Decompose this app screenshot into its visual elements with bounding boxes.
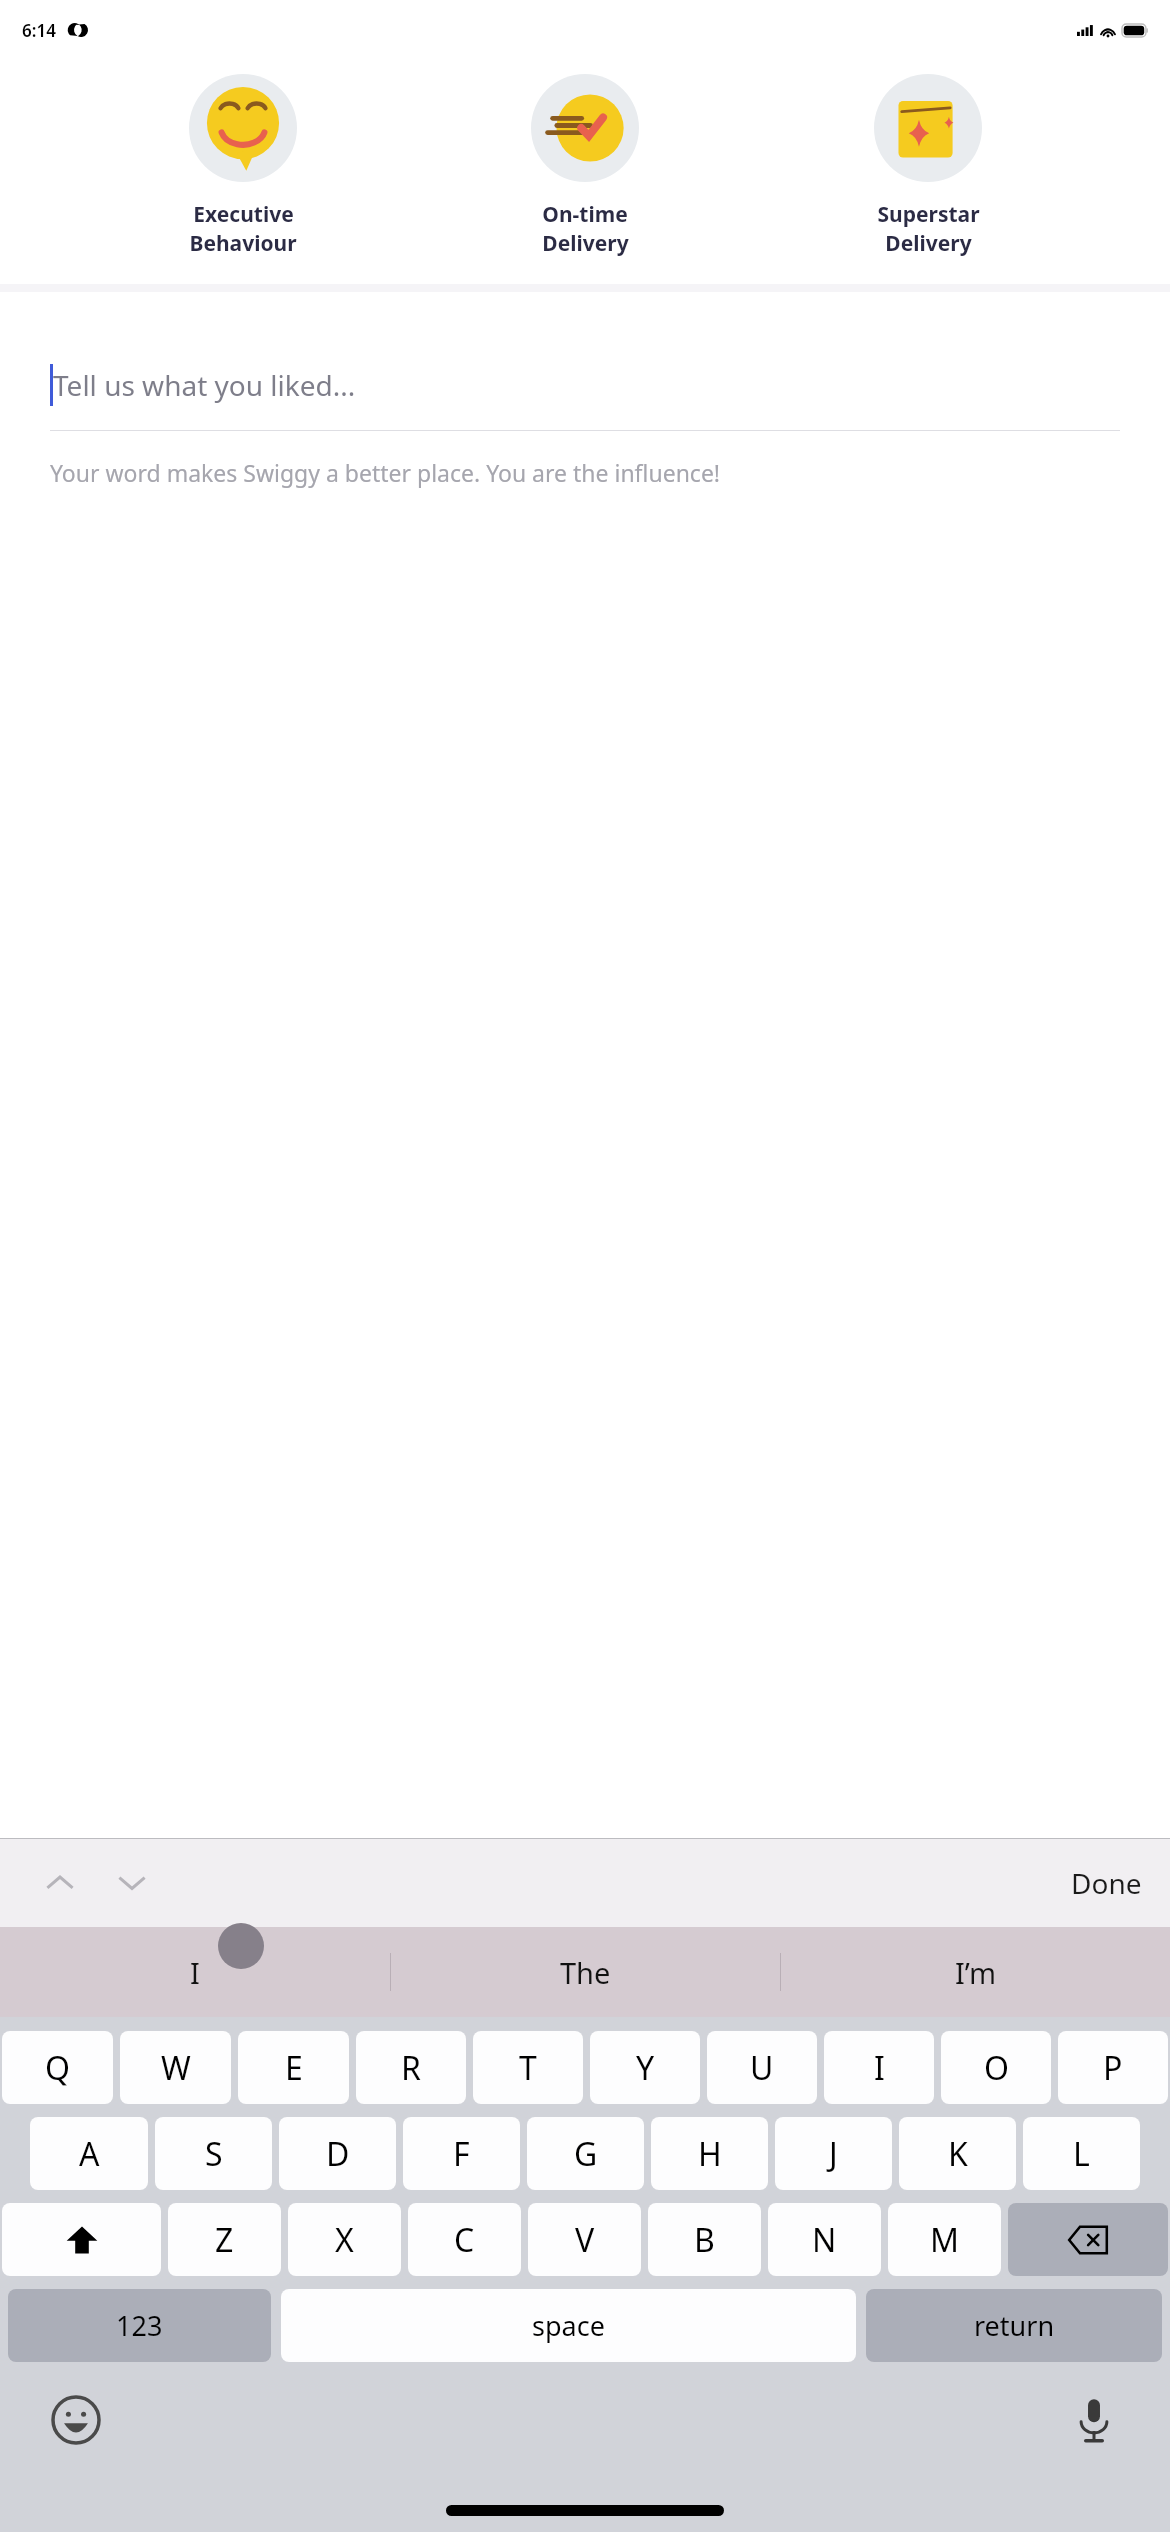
staticText: Your word makes Swiggy a better place. Y…: [50, 457, 721, 488]
button[interactable]: Superstar: [828, 74, 1028, 258]
staticText: Behaviour: [189, 229, 297, 258]
staticText: J: [829, 2132, 838, 2176]
button[interactable]: On-time: [485, 74, 685, 258]
staticText: Delivery: [542, 229, 629, 258]
staticText: F: [453, 2132, 470, 2176]
staticText: I: [874, 2046, 885, 2090]
button[interactable]: W: [120, 2031, 231, 2104]
button[interactable]: I’m: [781, 1927, 1170, 2017]
staticText: Z: [215, 2218, 234, 2262]
staticText: 123: [116, 2307, 163, 2344]
button[interactable]: I: [824, 2031, 934, 2104]
button[interactable]: V: [528, 2203, 641, 2276]
button[interactable]: L: [1023, 2117, 1140, 2190]
staticText: Executive: [193, 200, 294, 229]
staticText: E: [285, 2046, 303, 2090]
button[interactable]: F: [403, 2117, 520, 2190]
staticText: D: [326, 2132, 350, 2176]
button[interactable]: G: [527, 2117, 644, 2190]
button[interactable]: Executive: [143, 74, 343, 258]
staticText: H: [698, 2132, 722, 2176]
staticText: Tell us what you liked...: [53, 366, 356, 404]
button[interactable]: Tell us what you liked...: [50, 364, 1120, 406]
staticText: S: [205, 2132, 223, 2176]
staticText: A: [79, 2132, 100, 2176]
staticText: B: [694, 2218, 715, 2262]
staticText: Y: [636, 2046, 655, 2090]
button[interactable]: Z: [168, 2203, 281, 2276]
staticText: N: [812, 2218, 837, 2262]
staticText: P: [1103, 2046, 1123, 2090]
button[interactable]: Dictation: [1066, 2392, 1122, 2448]
button[interactable]: return: [866, 2289, 1162, 2362]
button[interactable]: Q: [2, 2031, 113, 2104]
button[interactable]: I: [0, 1927, 390, 2017]
staticText: On-time: [542, 200, 628, 229]
button[interactable]: J: [775, 2117, 892, 2190]
staticText: Q: [45, 2046, 70, 2090]
button[interactable]: T: [473, 2031, 583, 2104]
button[interactable]: M: [888, 2203, 1001, 2276]
staticText: O: [984, 2046, 1009, 2090]
staticText: 6:14: [22, 19, 56, 42]
button[interactable]: Y: [590, 2031, 700, 2104]
staticText: X: [335, 2218, 354, 2262]
button[interactable]: Backspace: [1008, 2203, 1168, 2276]
staticText: L: [1073, 2132, 1090, 2176]
staticText: R: [401, 2046, 421, 2090]
staticText: W: [161, 2046, 191, 2090]
staticText: Delivery: [885, 229, 972, 258]
staticText: Done: [1071, 1864, 1142, 1902]
button[interactable]: C: [408, 2203, 521, 2276]
staticText: V: [575, 2218, 595, 2262]
staticText: U: [750, 2046, 774, 2090]
button[interactable]: Previous field: [24, 1847, 96, 1919]
button[interactable]: B: [648, 2203, 761, 2276]
button[interactable]: E: [238, 2031, 349, 2104]
button[interactable]: P: [1058, 2031, 1168, 2104]
button[interactable]: N: [768, 2203, 881, 2276]
staticText: M: [930, 2218, 960, 2262]
button[interactable]: D: [279, 2117, 396, 2190]
button[interactable]: O: [941, 2031, 1051, 2104]
staticText: G: [574, 2132, 598, 2176]
button[interactable]: A: [30, 2117, 148, 2190]
button[interactable]: Emoji: [48, 2392, 104, 2448]
staticText: space: [532, 2307, 605, 2344]
staticText: C: [454, 2218, 475, 2262]
staticText: I’m: [955, 1953, 997, 1992]
button[interactable]: 123: [8, 2289, 271, 2362]
button[interactable]: R: [356, 2031, 466, 2104]
button[interactable]: Next field: [96, 1847, 168, 1919]
button[interactable]: Done: [1043, 1850, 1170, 1916]
staticText: The: [560, 1953, 611, 1992]
staticText: I: [190, 1953, 200, 1992]
staticText: T: [519, 2046, 537, 2090]
button[interactable]: Shift: [2, 2203, 161, 2276]
button[interactable]: K: [899, 2117, 1016, 2190]
button[interactable]: X: [288, 2203, 401, 2276]
button[interactable]: H: [651, 2117, 768, 2190]
button[interactable]: U: [707, 2031, 817, 2104]
staticText: Superstar: [877, 200, 980, 229]
staticText: return: [974, 2307, 1055, 2344]
button[interactable]: The: [391, 1927, 780, 2017]
staticText: K: [948, 2132, 968, 2176]
button[interactable]: S: [155, 2117, 272, 2190]
button[interactable]: space: [281, 2289, 856, 2362]
